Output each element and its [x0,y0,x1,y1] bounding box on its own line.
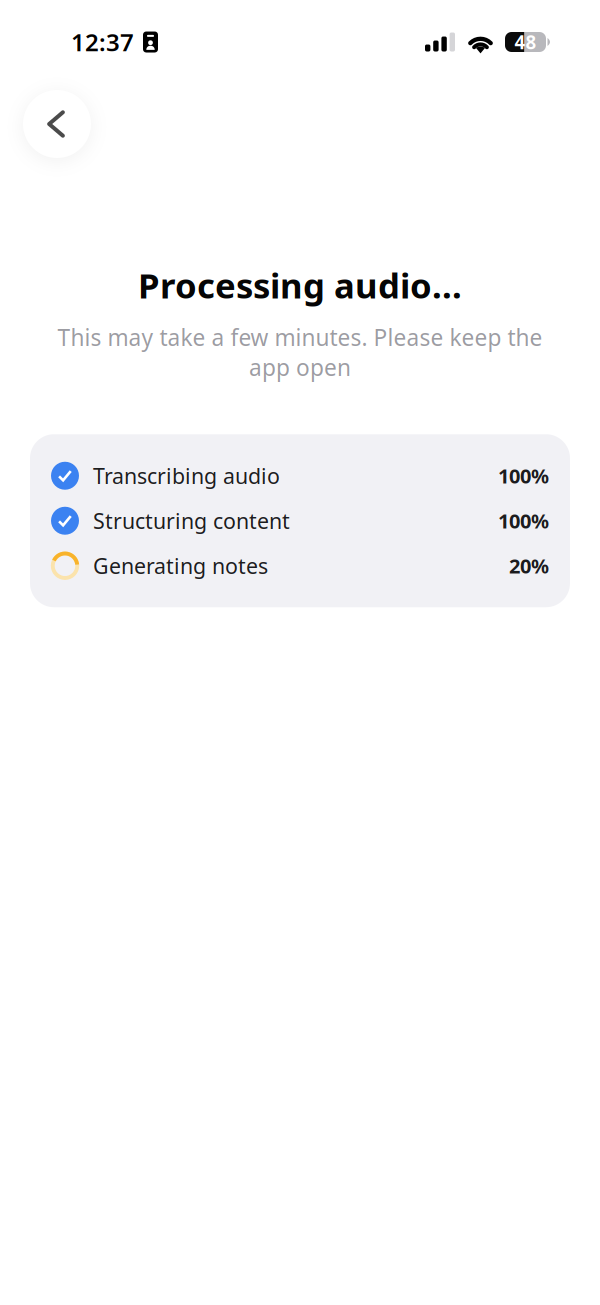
staticText: 100% [498,462,549,489]
staticText: Generating notes [93,552,268,580]
staticText: app open [249,352,351,382]
staticText: Processing audio... [138,262,462,308]
staticText: 20% [509,552,549,579]
staticText: Structuring content [93,507,290,535]
staticText: 12:37 [71,26,134,58]
button[interactable]: Back [23,90,91,158]
staticText: Transcribing audio [93,462,280,490]
staticText: This may take a few minutes. Please keep… [57,322,542,352]
staticText: 48 [514,30,536,54]
staticText: 100% [498,507,549,534]
